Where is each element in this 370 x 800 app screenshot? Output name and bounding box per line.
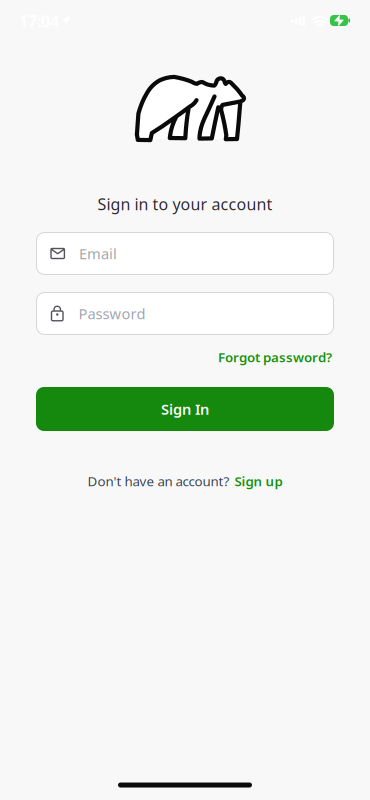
button[interactable]: Email bbox=[36, 232, 334, 275]
button[interactable]: Forgot password? bbox=[218, 348, 332, 366]
button[interactable]: Sign In bbox=[36, 387, 334, 431]
staticText: Sign in to your account bbox=[97, 193, 272, 215]
staticText: Sign In bbox=[161, 399, 209, 419]
staticText: Sign up bbox=[234, 472, 282, 490]
staticText: Password bbox=[78, 304, 145, 323]
button[interactable]: Password bbox=[36, 292, 334, 335]
staticText: Email bbox=[79, 244, 117, 263]
button[interactable]: Sign up bbox=[234, 472, 282, 490]
staticText: Forgot password? bbox=[218, 348, 332, 366]
staticText: Don't have an account? bbox=[87, 472, 229, 490]
